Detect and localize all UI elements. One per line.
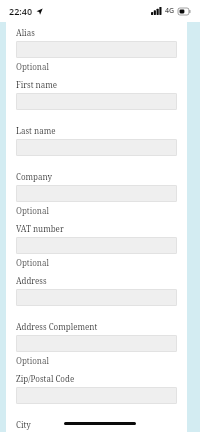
staticText: Last name <box>16 125 56 136</box>
staticText: VAT number <box>16 223 64 234</box>
staticText: 22:40 <box>9 5 33 17</box>
staticText: Optional <box>16 257 49 268</box>
button[interactable] <box>16 185 177 202</box>
staticText: Address Complement <box>16 321 98 332</box>
button[interactable] <box>16 335 177 352</box>
staticText: Optional <box>16 205 49 216</box>
button[interactable] <box>16 41 177 58</box>
staticText: Optional <box>16 355 49 366</box>
staticText: Zip/Postal Code <box>16 373 75 384</box>
staticText: First name <box>16 79 58 90</box>
staticText: City <box>16 419 31 430</box>
staticText: Company <box>16 171 53 182</box>
button[interactable] <box>16 387 177 404</box>
staticText: Optional <box>16 61 49 72</box>
button[interactable] <box>16 93 177 110</box>
button[interactable] <box>16 139 177 156</box>
other: Location active <box>36 8 43 15</box>
button[interactable] <box>16 237 177 254</box>
staticText: Address <box>16 275 47 286</box>
button[interactable] <box>16 289 177 306</box>
staticText: Alias <box>16 27 35 38</box>
staticText: 4G <box>165 6 175 16</box>
